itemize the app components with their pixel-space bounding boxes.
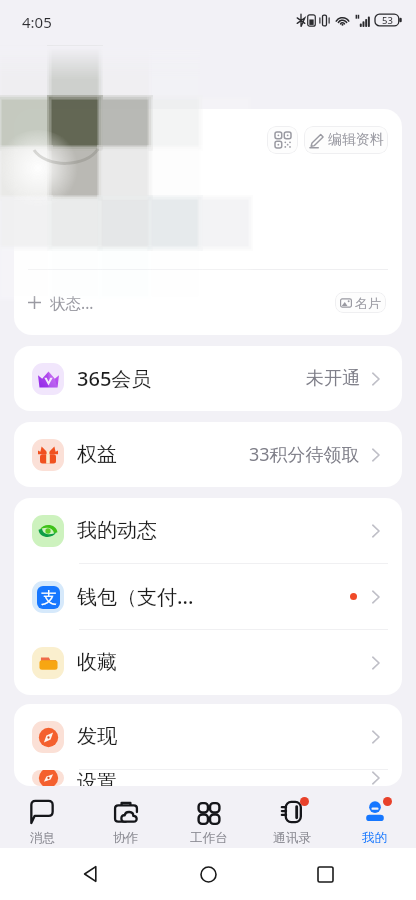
staticText: 33积分待领取 — [249, 442, 360, 467]
button[interactable]: 编辑资料 — [304, 126, 388, 154]
button[interactable]: Recents — [299, 848, 351, 900]
staticText: 365会员 — [77, 365, 152, 392]
button[interactable]: 消息 — [0, 786, 84, 848]
staticText: 53 — [382, 14, 393, 27]
staticText: 状态... — [50, 292, 94, 313]
staticText: 未开通 — [306, 367, 360, 390]
button[interactable]: 协作 — [84, 786, 167, 848]
staticText: 编辑资料 — [328, 131, 384, 149]
staticText: 工作台 — [190, 830, 228, 846]
staticText: 支 — [41, 588, 57, 608]
staticText: 消息 — [30, 830, 55, 846]
button[interactable]: 二维码 — [267, 126, 298, 154]
staticText: 权益 — [77, 442, 117, 467]
staticText: 发现 — [77, 724, 117, 749]
staticText: 4:05 — [22, 12, 52, 32]
button[interactable]: 收藏 — [14, 630, 402, 695]
staticText: 协作 — [113, 830, 138, 846]
staticText: 钱包（支付... — [77, 583, 194, 610]
button[interactable]: 365会员 — [14, 346, 402, 411]
staticText: 我的动态 — [77, 518, 157, 543]
button[interactable]: 设置 — [14, 770, 402, 786]
button[interactable]: 发现 — [14, 704, 402, 769]
button[interactable]: Back — [65, 848, 117, 900]
button[interactable]: 我的动态 — [14, 498, 402, 563]
button[interactable]: 名片 — [335, 292, 386, 313]
staticText: 名片 — [355, 295, 381, 311]
staticText: 通讯录 — [273, 830, 311, 846]
button[interactable]: 权益 — [14, 422, 402, 487]
staticText: 我的 — [362, 830, 387, 846]
button[interactable]: Home — [182, 848, 234, 900]
button[interactable]: 通讯录 — [250, 786, 333, 848]
button[interactable]: 支 — [14, 564, 402, 629]
button[interactable]: 工作台 — [167, 786, 250, 848]
staticText: 设置 — [77, 770, 117, 786]
staticText: 收藏 — [77, 650, 117, 675]
button[interactable]: 我的 — [333, 786, 416, 848]
button[interactable]: 状态... — [28, 292, 94, 313]
